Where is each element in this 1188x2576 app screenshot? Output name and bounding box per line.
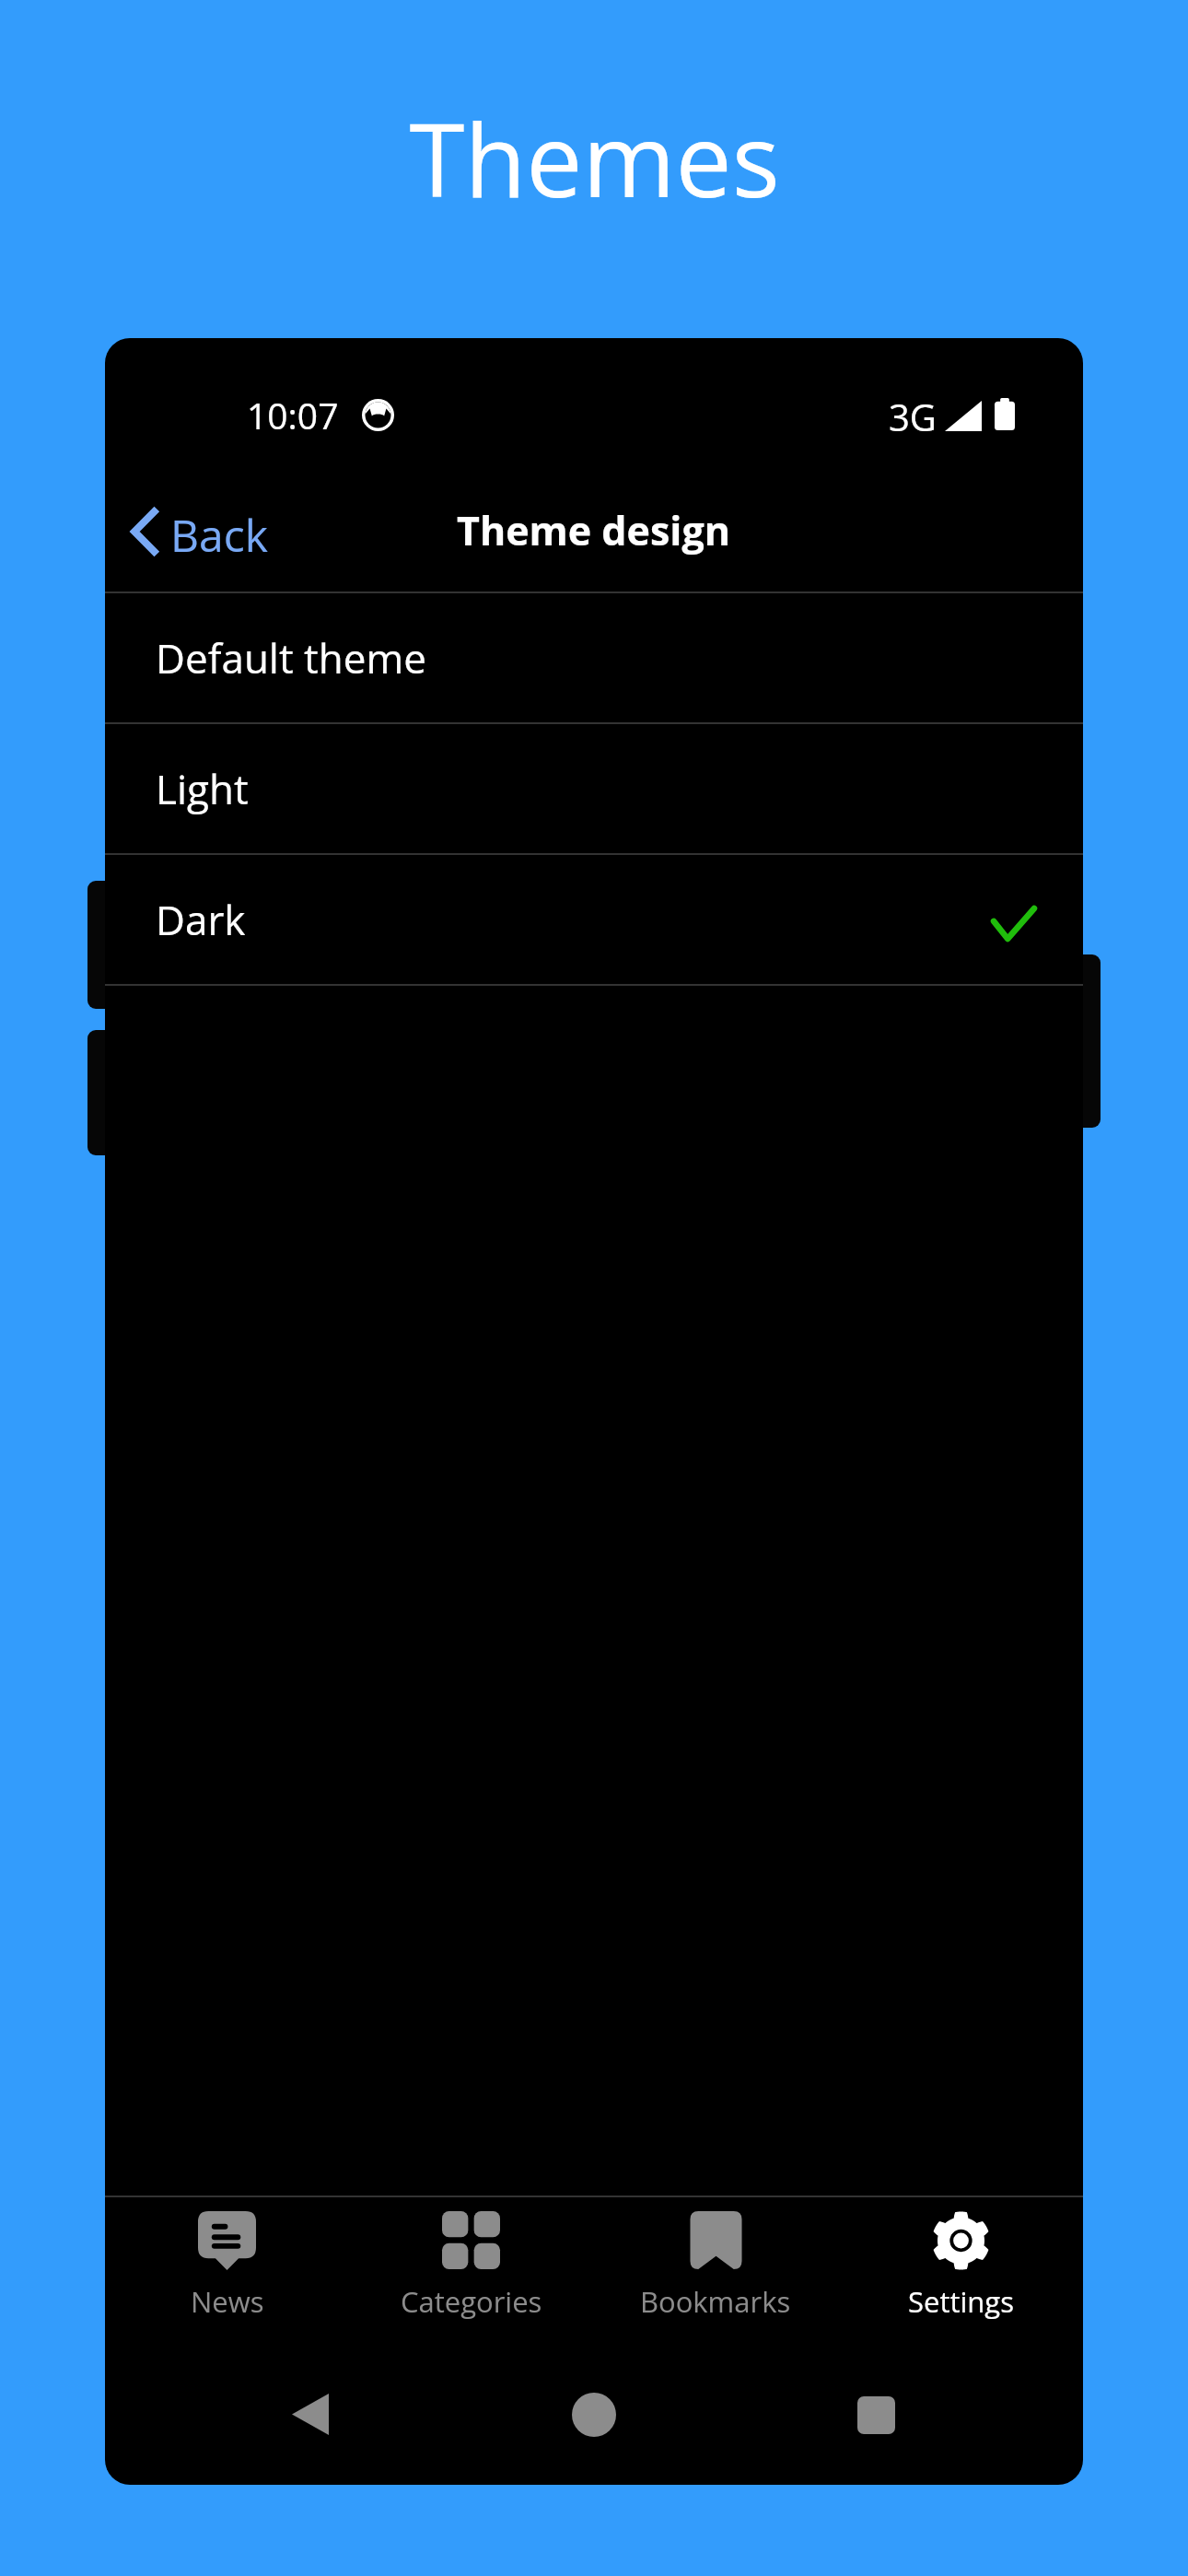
button[interactable]: Dark [105, 855, 1083, 984]
button[interactable]: Light [105, 724, 1083, 853]
button[interactable]: Settings [838, 2197, 1083, 2336]
button[interactable]: News [105, 2197, 349, 2336]
button[interactable]: Categories [349, 2197, 593, 2336]
staticText: Default theme [156, 630, 426, 685]
staticText: Themes [409, 89, 780, 226]
button[interactable]: Home [543, 2364, 645, 2465]
staticText: Bookmarks [640, 2282, 791, 2321]
staticText: Light [156, 761, 249, 816]
staticText: 3G [889, 392, 937, 441]
staticText: Dark [156, 892, 246, 947]
staticText: Theme design [457, 503, 731, 557]
staticText: News [191, 2282, 264, 2321]
button[interactable]: Default theme [105, 593, 1083, 722]
staticText: 10:07 [247, 391, 339, 439]
staticText: Back [170, 505, 268, 565]
staticText: Categories [401, 2282, 542, 2321]
button[interactable]: Back [118, 476, 385, 592]
staticText: Settings [908, 2282, 1014, 2321]
button[interactable]: Back [261, 2363, 362, 2465]
button[interactable]: Recent apps [825, 2364, 926, 2465]
button[interactable]: Bookmarks [593, 2197, 838, 2336]
